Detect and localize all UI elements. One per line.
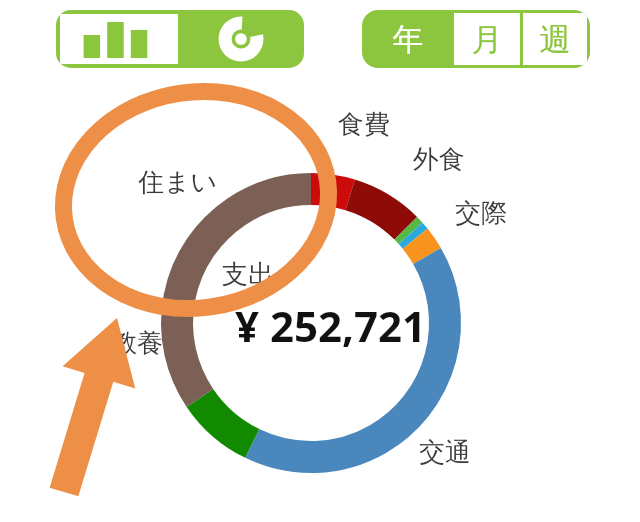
button[interactable]	[523, 13, 587, 65]
button[interactable]	[454, 13, 520, 65]
button[interactable]	[362, 10, 454, 68]
button[interactable]: Bar chart view	[60, 14, 178, 64]
button[interactable]: Pie chart view	[182, 14, 300, 64]
